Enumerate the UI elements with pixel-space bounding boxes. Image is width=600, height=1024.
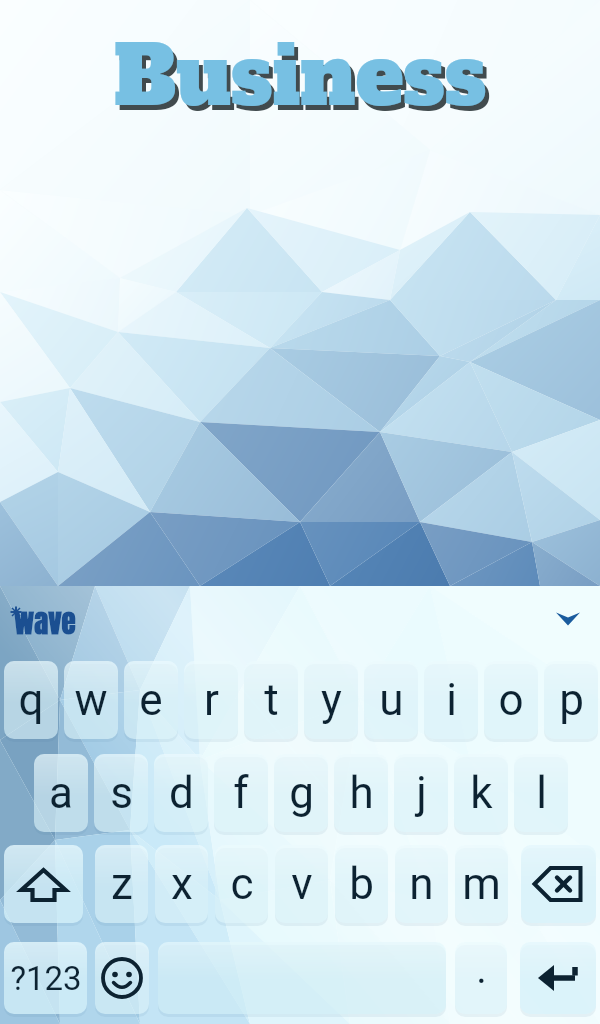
- staticText: g: [289, 767, 314, 819]
- button[interactable]: d: [154, 754, 208, 832]
- staticText: v: [291, 858, 313, 910]
- button[interactable]: a: [34, 754, 88, 832]
- staticText: s: [110, 767, 133, 819]
- button[interactable]: p: [544, 661, 598, 739]
- staticText: t: [264, 674, 279, 726]
- button[interactable]: h: [334, 754, 388, 832]
- staticText: z: [111, 858, 133, 910]
- staticText: .: [476, 946, 487, 993]
- staticText: w: [74, 674, 108, 726]
- button[interactable]: k: [454, 754, 508, 832]
- button[interactable]: f: [214, 754, 268, 832]
- button[interactable]: Hide suggestions: [548, 598, 588, 638]
- staticText: wave: [14, 600, 76, 644]
- staticText: u: [379, 674, 404, 726]
- staticText: j: [416, 767, 427, 819]
- staticText: o: [498, 674, 524, 726]
- button[interactable]: Backspace: [521, 845, 596, 923]
- staticText: r: [204, 674, 219, 726]
- staticText: c: [230, 858, 254, 910]
- staticText: ?123: [10, 959, 82, 998]
- button[interactable]: y: [304, 661, 358, 739]
- button[interactable]: j: [394, 754, 448, 832]
- button[interactable]: ?123: [4, 942, 87, 1014]
- staticText: Business: [118, 27, 491, 137]
- staticText: n: [409, 858, 434, 910]
- staticText: a: [49, 767, 73, 819]
- staticText: h: [349, 767, 374, 819]
- staticText: x: [171, 858, 193, 910]
- staticText: l: [536, 767, 547, 819]
- button[interactable]: w: [64, 661, 118, 739]
- button[interactable]: Emoji: [95, 942, 149, 1014]
- button[interactable]: s: [94, 754, 148, 832]
- button[interactable]: b: [335, 845, 388, 923]
- staticText: m: [462, 858, 501, 910]
- staticText: p: [559, 674, 584, 726]
- button[interactable]: q: [4, 661, 58, 739]
- button[interactable]: c: [215, 845, 268, 923]
- button[interactable]: l: [514, 754, 568, 832]
- staticText: e: [139, 674, 163, 726]
- button[interactable]: Enter: [520, 942, 596, 1014]
- button[interactable]: n: [395, 845, 448, 923]
- button[interactable]: u: [364, 661, 418, 739]
- button[interactable]: t: [244, 661, 298, 739]
- button[interactable]: Shift: [4, 845, 83, 923]
- button[interactable]: wave: [8, 597, 94, 645]
- staticText: b: [349, 858, 374, 910]
- button[interactable]: z: [95, 845, 148, 923]
- button[interactable]: o: [484, 661, 538, 739]
- button[interactable]: [158, 942, 446, 1014]
- staticText: k: [470, 767, 493, 819]
- button[interactable]: m: [455, 845, 508, 923]
- staticText: q: [18, 674, 44, 726]
- button[interactable]: i: [424, 661, 478, 739]
- staticText: Business: [114, 22, 487, 132]
- button[interactable]: g: [274, 754, 328, 832]
- button[interactable]: .: [455, 942, 507, 1014]
- button[interactable]: r: [184, 661, 238, 739]
- button[interactable]: v: [275, 845, 328, 923]
- button[interactable]: x: [155, 845, 208, 923]
- button[interactable]: e: [124, 661, 178, 739]
- staticText: y: [321, 674, 342, 726]
- staticText: i: [446, 674, 457, 726]
- staticText: f: [233, 767, 249, 819]
- staticText: d: [169, 767, 194, 819]
